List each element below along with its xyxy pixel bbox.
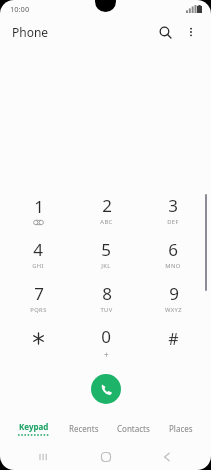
staticText: MNO	[165, 262, 181, 270]
button[interactable]: Home	[89, 444, 123, 470]
button[interactable]	[9, 320, 67, 364]
staticText: DEF	[167, 218, 179, 226]
staticText: 5	[101, 238, 111, 261]
button[interactable]: 7	[9, 276, 67, 320]
button[interactable]: 2	[77, 188, 135, 232]
button[interactable]: Search	[153, 20, 177, 44]
staticText: TUV	[100, 306, 113, 314]
button[interactable]: 4	[9, 232, 67, 276]
button[interactable]: Recent apps	[27, 444, 61, 470]
staticText: Contacts	[117, 423, 150, 434]
button[interactable]: 9	[144, 276, 202, 320]
staticText: Places	[169, 423, 193, 434]
button[interactable]: #	[144, 320, 202, 364]
staticText: +	[104, 349, 109, 360]
staticText: 8	[102, 282, 112, 305]
button[interactable]: Back	[150, 444, 184, 470]
staticText: 2	[102, 194, 112, 217]
button[interactable]: Places	[169, 418, 193, 438]
staticText: Recents	[69, 423, 99, 434]
button[interactable]: More options	[179, 20, 203, 44]
staticText: 6	[168, 238, 178, 261]
staticText: Keypad	[19, 421, 49, 432]
button[interactable]: 0	[77, 320, 135, 364]
staticText: 9	[169, 282, 179, 305]
staticText: Phone	[12, 24, 49, 40]
button[interactable]: Call	[91, 374, 121, 404]
staticText: #	[168, 328, 179, 350]
button[interactable]: Recents	[69, 418, 99, 438]
staticText: 0	[101, 325, 111, 348]
button[interactable]: 8	[77, 276, 135, 320]
button[interactable]: Keypad	[18, 418, 50, 438]
staticText: 3	[168, 194, 178, 217]
staticText: 1	[34, 195, 44, 218]
button[interactable]: 6	[144, 232, 202, 276]
staticText: PQRS	[30, 306, 47, 314]
staticText: 4	[33, 238, 43, 261]
staticText: 7	[34, 282, 44, 305]
button[interactable]: 3	[144, 188, 202, 232]
button[interactable]: 1	[9, 188, 67, 232]
staticText: 10:00	[10, 4, 30, 14]
staticText: GHI	[32, 262, 44, 270]
staticText: JKL	[101, 262, 111, 270]
staticText: ABC	[100, 218, 113, 226]
button[interactable]: 5	[77, 232, 135, 276]
staticText: WXYZ	[165, 306, 182, 314]
button[interactable]: Contacts	[117, 418, 150, 438]
